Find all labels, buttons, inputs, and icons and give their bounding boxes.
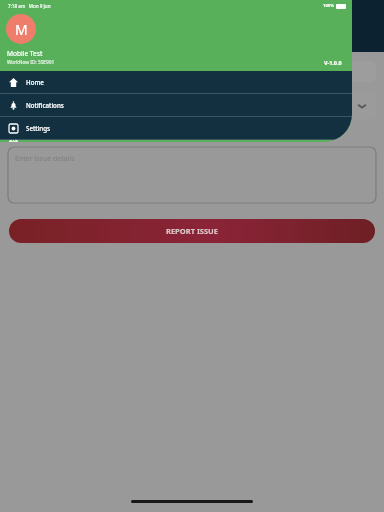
button[interactable]: Logout xyxy=(0,140,352,142)
staticText: Mobile Test xyxy=(7,49,43,58)
staticText: M xyxy=(15,20,28,39)
button[interactable]: Open dropdown xyxy=(8,93,376,119)
button[interactable]: Notifications xyxy=(0,94,352,116)
staticText: V-1.0.0 xyxy=(324,59,342,66)
button[interactable]: REPORT ISSUE xyxy=(9,219,375,243)
staticText: WorkNow ID: 5SE901 xyxy=(7,59,55,66)
staticText: Notifications xyxy=(26,101,64,109)
other: Open dropdown xyxy=(358,102,366,110)
staticText: 100% xyxy=(323,3,334,9)
staticText: Home xyxy=(26,78,44,86)
button[interactable]: Home xyxy=(0,71,352,93)
staticText: 7:18 am Mon 9 Jun xyxy=(8,3,51,9)
staticText: REPORT ISSUE xyxy=(166,226,218,236)
staticText: Description xyxy=(9,132,47,142)
button[interactable] xyxy=(8,61,376,82)
staticText: Enter issue details xyxy=(15,154,75,164)
staticText: Settings xyxy=(26,124,51,132)
button[interactable]: Settings xyxy=(0,117,352,139)
button[interactable]: M xyxy=(6,14,36,44)
button[interactable]: Enter issue details xyxy=(8,147,376,203)
